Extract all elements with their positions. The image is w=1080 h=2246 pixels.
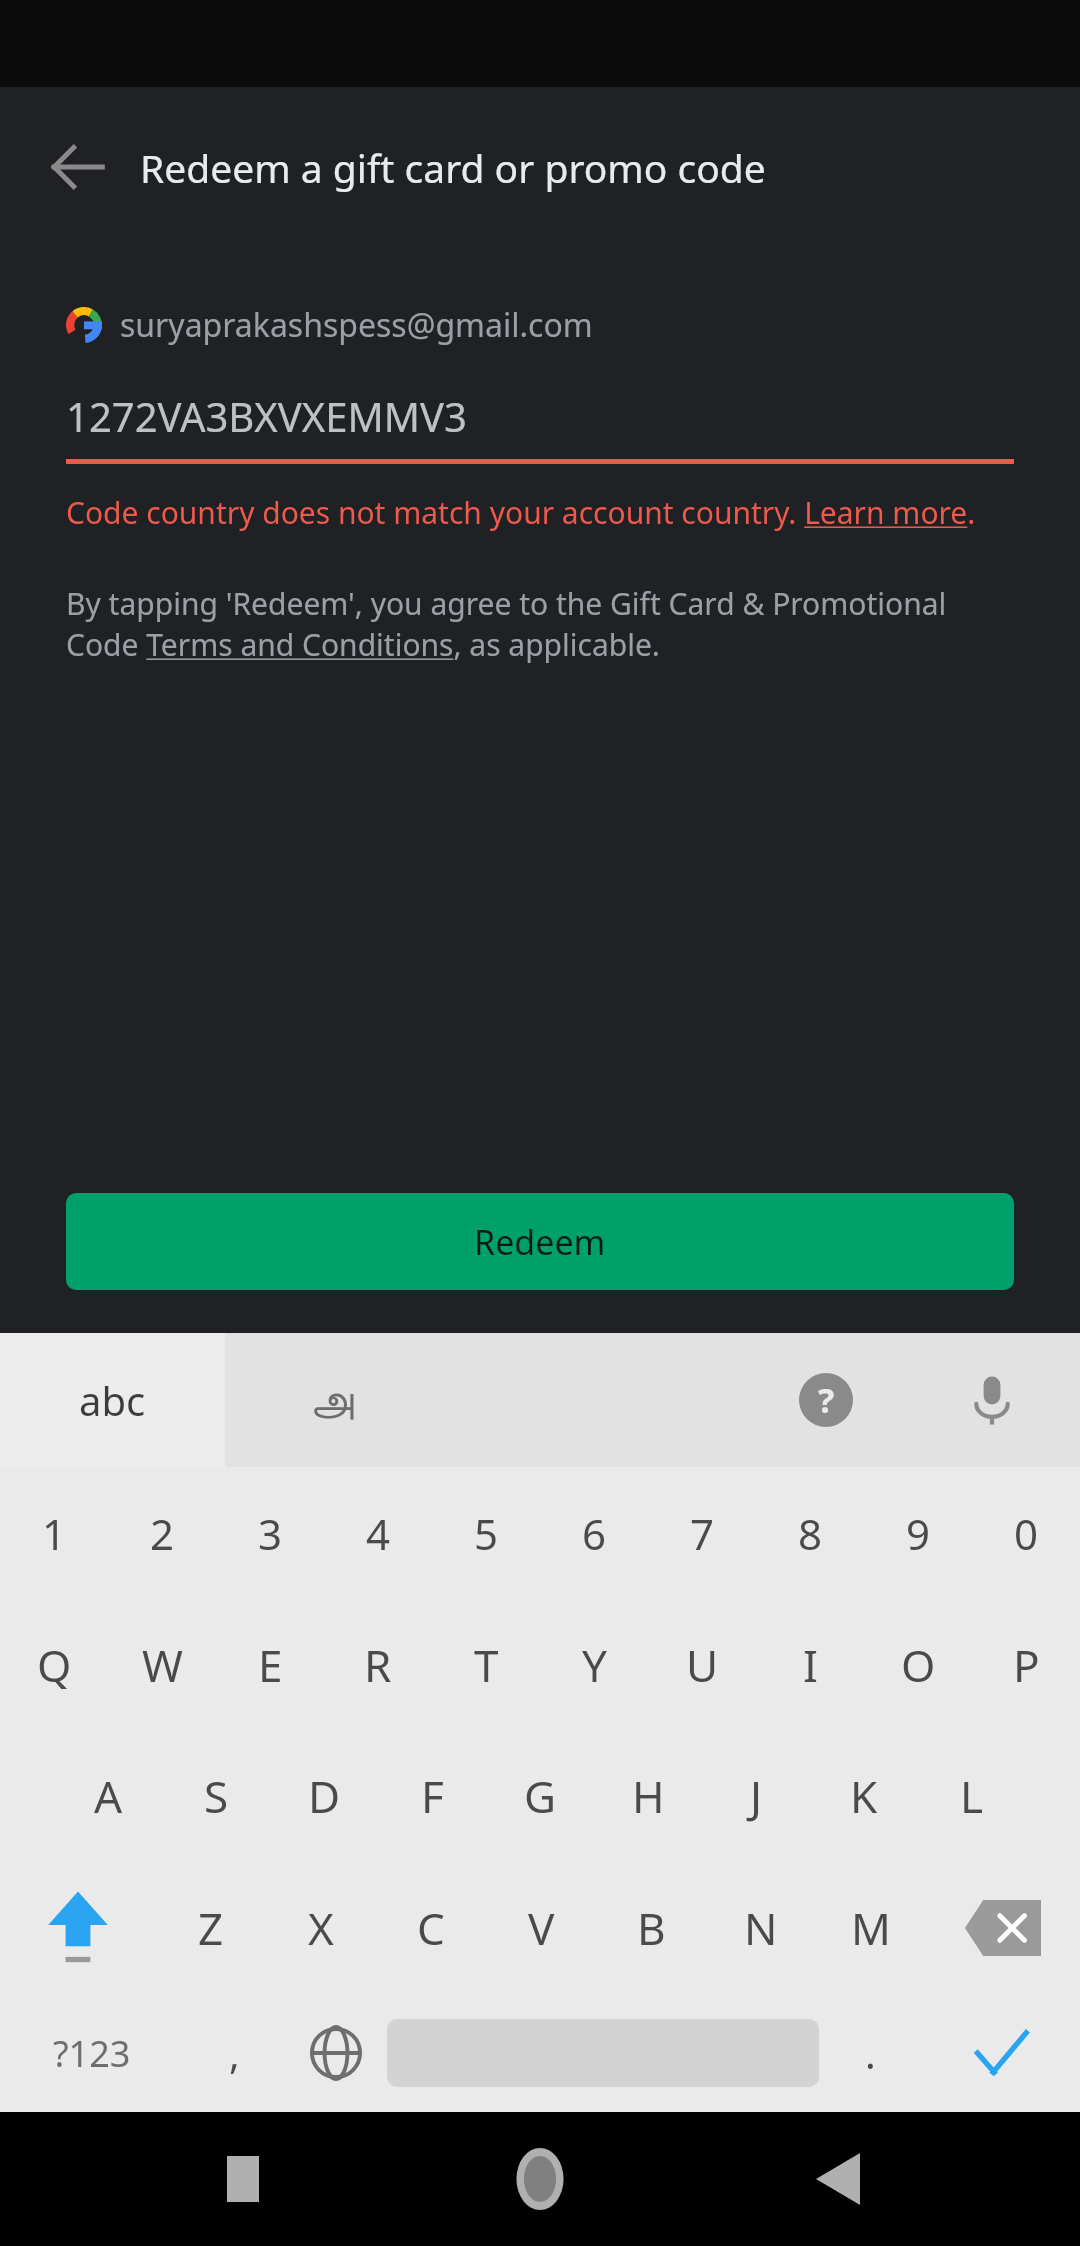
button[interactable]: Y: [540, 1599, 648, 1730]
button[interactable]: R: [324, 1599, 432, 1730]
button[interactable]: O: [864, 1599, 972, 1730]
button[interactable]: G: [486, 1730, 594, 1861]
staticText: G: [524, 1766, 557, 1826]
staticText: Redeem: [474, 1219, 606, 1265]
staticText: S: [204, 1766, 229, 1826]
button[interactable]: V: [486, 1861, 596, 1994]
button[interactable]: Z: [155, 1861, 266, 1994]
button[interactable]: P: [972, 1599, 1080, 1730]
button[interactable]: Back: [783, 2124, 893, 2234]
staticText: ?123: [53, 2029, 131, 2078]
staticText: 7: [690, 1505, 715, 1562]
staticText: Z: [198, 1898, 224, 1958]
staticText: ,: [229, 2026, 240, 2080]
staticText: F: [421, 1766, 444, 1826]
button[interactable]: A: [54, 1730, 162, 1861]
staticText: 4: [366, 1505, 391, 1562]
button[interactable]: 3: [216, 1467, 324, 1599]
staticText: 8: [798, 1505, 823, 1562]
button[interactable]: E: [216, 1599, 324, 1730]
button[interactable]: Help: [778, 1352, 874, 1448]
staticText: Y: [582, 1635, 607, 1695]
staticText: W: [142, 1635, 183, 1695]
button[interactable]: Enter: [921, 1994, 1080, 2112]
button[interactable]: Tamil keyboard: [287, 1355, 377, 1445]
button[interactable]: B: [596, 1861, 706, 1994]
staticText: A: [94, 1766, 123, 1826]
staticText: P: [1013, 1635, 1040, 1695]
button[interactable]: N: [706, 1861, 816, 1994]
staticText: 1272VA3BXVXEMMV3: [66, 389, 467, 443]
staticText: M: [851, 1898, 891, 1958]
button[interactable]: T: [432, 1599, 540, 1730]
staticText: K: [850, 1766, 878, 1826]
staticText: 0: [1014, 1505, 1039, 1562]
staticText: 3: [258, 1505, 283, 1562]
staticText: D: [308, 1766, 341, 1826]
button[interactable]: K: [810, 1730, 918, 1861]
button[interactable]: Home: [485, 2124, 595, 2234]
button[interactable]: Shift: [0, 1861, 155, 1994]
button[interactable]: Q: [0, 1599, 108, 1730]
button[interactable]: U: [648, 1599, 756, 1730]
staticText: அ: [310, 1379, 354, 1421]
button[interactable]: Voice input: [944, 1352, 1040, 1448]
staticText: C: [417, 1898, 445, 1958]
staticText: X: [308, 1898, 334, 1958]
button[interactable]: ?123: [0, 1994, 183, 2112]
staticText: N: [744, 1898, 778, 1958]
button[interactable]: 8: [756, 1467, 864, 1599]
staticText: B: [637, 1898, 666, 1958]
button[interactable]: 0: [972, 1467, 1080, 1599]
button[interactable]: Redeem: [66, 1193, 1014, 1290]
button[interactable]: D: [270, 1730, 378, 1861]
button[interactable]: X: [266, 1861, 376, 1994]
staticText: abc: [79, 1373, 146, 1427]
staticText: T: [474, 1635, 499, 1695]
button[interactable]: J: [702, 1730, 810, 1861]
button[interactable]: 2: [108, 1467, 216, 1599]
button[interactable]: H: [594, 1730, 702, 1861]
button[interactable]: M: [816, 1861, 926, 1994]
button[interactable]: 9: [864, 1467, 972, 1599]
staticText: U: [686, 1635, 719, 1695]
staticText: L: [960, 1766, 984, 1826]
staticText: O: [901, 1635, 936, 1695]
staticText: .: [865, 2026, 876, 2080]
staticText: 2: [150, 1505, 175, 1562]
button[interactable]: S: [162, 1730, 270, 1861]
button[interactable]: abc: [0, 1333, 225, 1467]
staticText: J: [750, 1766, 763, 1826]
button[interactable]: W: [108, 1599, 216, 1730]
button[interactable]: L: [918, 1730, 1026, 1861]
staticText: 5: [474, 1505, 499, 1562]
button[interactable]: ,: [183, 1994, 285, 2112]
button[interactable]: C: [376, 1861, 486, 1994]
staticText: ?: [818, 1377, 835, 1423]
staticText: Q: [37, 1635, 72, 1695]
button[interactable]: 5: [432, 1467, 540, 1599]
button[interactable]: Change language: [285, 1994, 387, 2112]
staticText: 1: [42, 1505, 67, 1562]
staticText: 9: [906, 1505, 931, 1562]
button[interactable]: 4: [324, 1467, 432, 1599]
button[interactable]: Recents: [188, 2124, 298, 2234]
button[interactable]: 6: [540, 1467, 648, 1599]
staticText: R: [364, 1635, 392, 1695]
staticText: E: [258, 1635, 283, 1695]
button[interactable]: I: [756, 1599, 864, 1730]
staticText: H: [632, 1766, 665, 1826]
button[interactable]: Backspace: [926, 1861, 1080, 1994]
button[interactable]: .: [819, 1994, 921, 2112]
staticText: suryaprakashspess@gmail.com: [120, 303, 593, 347]
staticText: By tapping 'Redeem', you agree to the Gi…: [66, 583, 1014, 665]
button[interactable]: F: [378, 1730, 486, 1861]
button[interactable]: 7: [648, 1467, 756, 1599]
staticText: I: [803, 1635, 818, 1695]
staticText: 6: [582, 1505, 607, 1562]
button[interactable]: Back: [30, 119, 126, 215]
staticText: V: [528, 1898, 555, 1958]
staticText: Code country does not match your account…: [66, 492, 976, 533]
button[interactable]: 1: [0, 1467, 108, 1599]
